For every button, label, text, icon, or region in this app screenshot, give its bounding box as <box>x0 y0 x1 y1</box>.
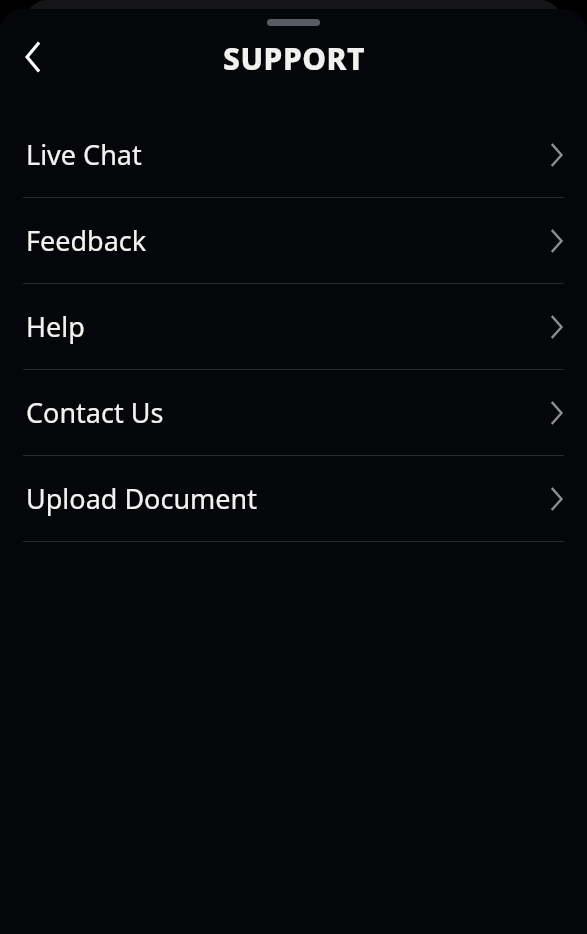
staticText: Live Chat <box>26 136 550 173</box>
button[interactable]: Feedback <box>0 198 587 284</box>
staticText: SUPPORT <box>223 38 365 79</box>
staticText: Contact Us <box>26 394 550 431</box>
button[interactable]: Back <box>10 34 56 80</box>
staticText: Upload Document <box>26 480 550 517</box>
button[interactable]: Live Chat <box>0 112 587 198</box>
button[interactable]: Upload Document <box>0 456 587 542</box>
staticText: Feedback <box>26 222 550 259</box>
button[interactable]: Help <box>0 284 587 370</box>
button[interactable]: Contact Us <box>0 370 587 456</box>
staticText: Help <box>26 308 550 345</box>
